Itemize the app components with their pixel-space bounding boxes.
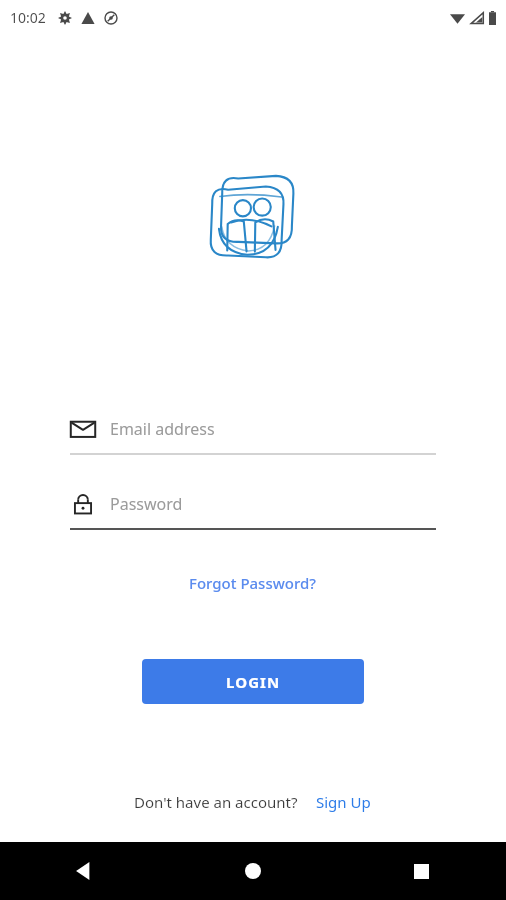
button[interactable]: Email address <box>70 412 436 457</box>
staticText: 10:02 <box>10 8 46 27</box>
button[interactable]: Forgot Password? <box>179 568 327 598</box>
button[interactable]: Home <box>168 842 337 900</box>
staticText: LOGIN <box>226 672 281 692</box>
staticText: Sign Up <box>316 792 371 812</box>
staticText: Forgot Password? <box>189 573 317 593</box>
button[interactable]: Sign Up <box>314 788 373 816</box>
staticText: Don't have an account? <box>134 792 298 812</box>
staticText: Password <box>110 493 183 515</box>
other: App logo <box>207 172 299 270</box>
button[interactable]: Password <box>70 487 436 532</box>
staticText: Email address <box>110 418 215 440</box>
button[interactable]: LOGIN <box>142 659 364 704</box>
button[interactable]: Recent apps <box>337 842 506 900</box>
button[interactable]: Back <box>0 842 168 900</box>
